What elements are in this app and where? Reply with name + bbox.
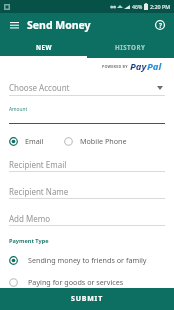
button[interactable]: Paying for goods or services xyxy=(9,276,165,288)
staticText: Amount xyxy=(9,106,28,113)
staticText: NEW xyxy=(36,43,52,51)
staticText: SUBMIT xyxy=(71,294,103,304)
button[interactable]: Choose Account xyxy=(9,80,165,96)
staticText: Paying for goods or services xyxy=(28,277,124,287)
staticText: Send Money xyxy=(27,18,91,32)
staticText: HISTORY xyxy=(115,43,146,51)
staticText: Email xyxy=(25,136,44,146)
button[interactable]: Sending money to friends or family xyxy=(9,253,165,267)
staticText: 46% xyxy=(132,3,143,10)
button[interactable]: Email xyxy=(9,136,44,146)
staticText: Pal xyxy=(147,60,162,73)
staticText: Recipient Email xyxy=(9,159,67,170)
button[interactable]: Amount xyxy=(9,106,165,124)
button[interactable]: Recipient Name xyxy=(9,185,165,199)
staticText: ? xyxy=(159,21,162,29)
staticText: 2:20 PM xyxy=(150,3,171,10)
staticText: Choose Account xyxy=(9,82,70,93)
staticText: Payment Type xyxy=(9,237,49,245)
button[interactable]: Help xyxy=(152,17,168,33)
button[interactable]: SUBMIT xyxy=(0,288,174,310)
staticText: Mobile Phone xyxy=(80,136,127,146)
button[interactable]: Mobile Phone xyxy=(64,136,127,146)
button[interactable]: NEW xyxy=(0,37,87,56)
button[interactable]: Add Memo xyxy=(9,212,165,226)
staticText: Add Memo xyxy=(9,213,51,224)
staticText: POWERED BY xyxy=(102,64,128,69)
staticText: Pay xyxy=(130,60,147,73)
button[interactable]: HISTORY xyxy=(87,37,174,56)
staticText: Sending money to friends or family xyxy=(28,255,147,265)
staticText: Recipient Name xyxy=(9,186,69,197)
button[interactable]: Recipient Email xyxy=(9,158,165,172)
button[interactable]: Open navigation menu xyxy=(6,17,22,33)
